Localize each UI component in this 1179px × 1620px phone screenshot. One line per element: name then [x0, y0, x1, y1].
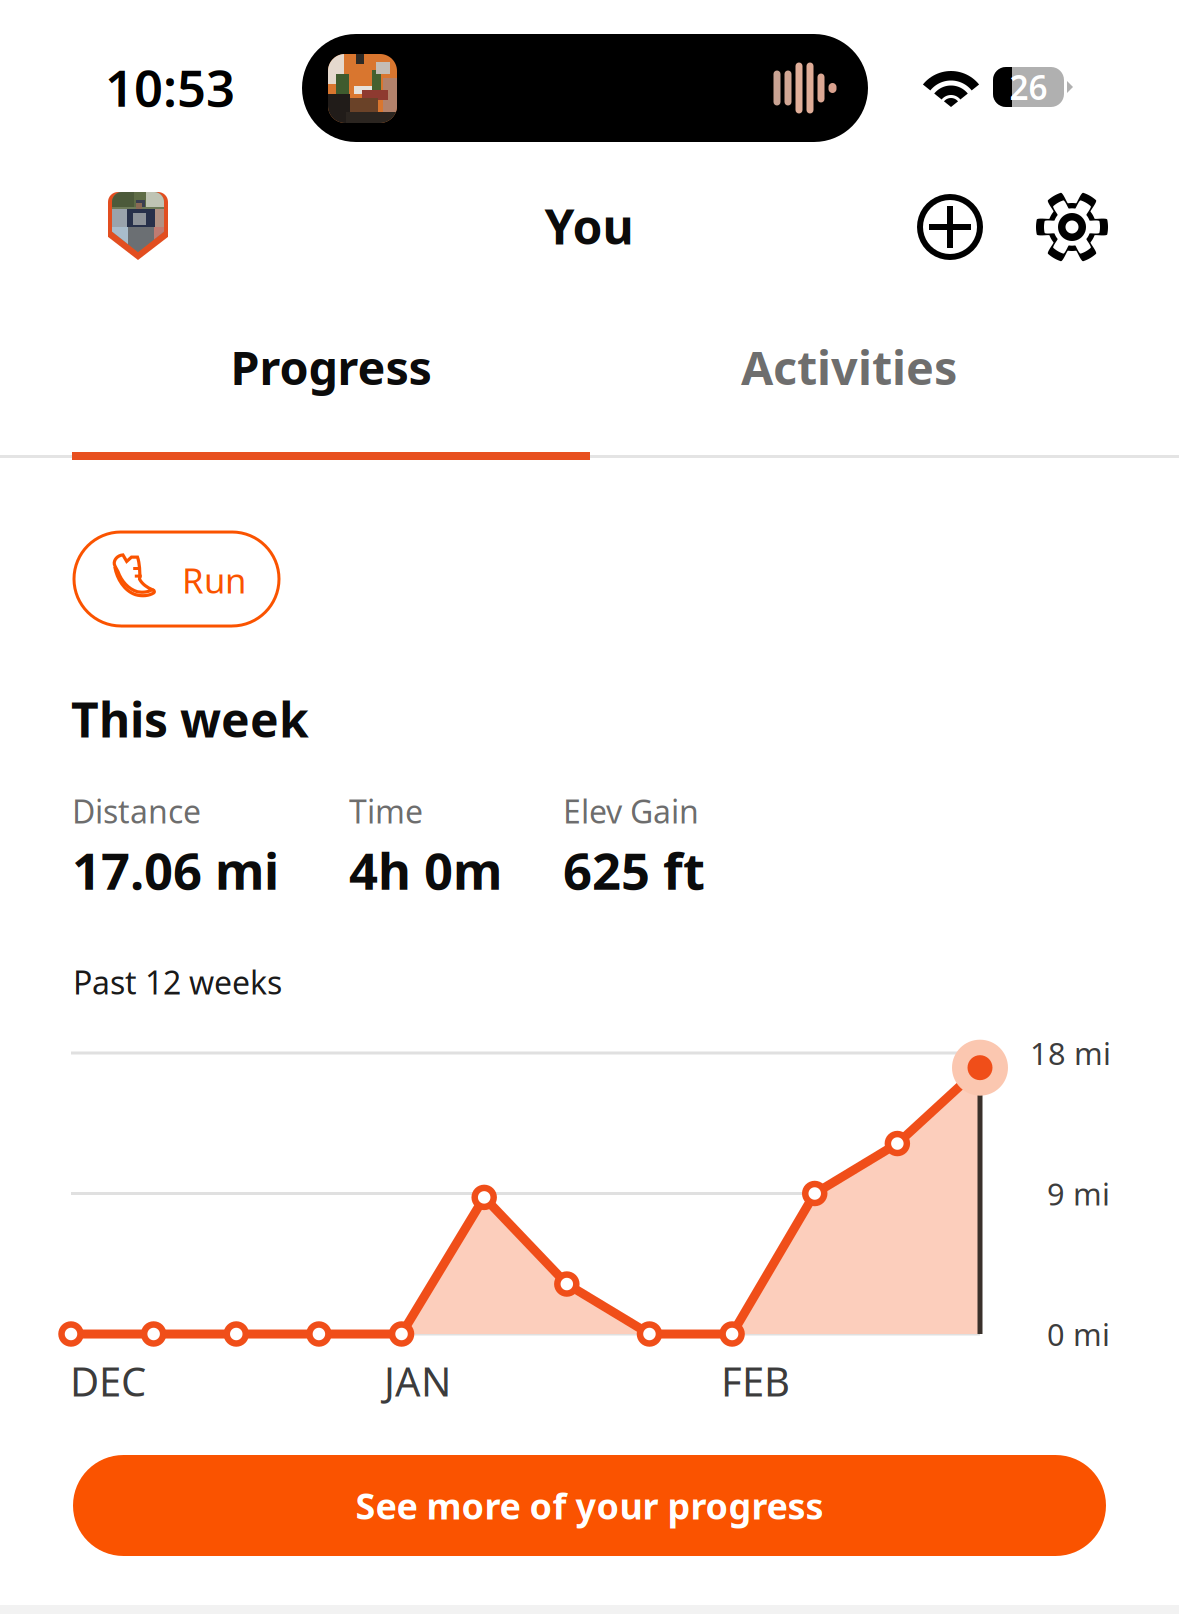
staticText: Distance	[72, 790, 201, 832]
staticText: 625 ft	[563, 836, 705, 904]
staticText: 0 mi	[1047, 1314, 1110, 1354]
staticText: Progress	[230, 336, 431, 398]
staticText: Run	[182, 557, 246, 603]
staticText: Elev Gain	[563, 790, 699, 832]
button[interactable]: Settings	[1036, 191, 1108, 263]
staticText: 4h 0m	[349, 836, 502, 904]
staticText: DEC	[70, 1354, 146, 1407]
staticText: Activities	[741, 336, 957, 398]
staticText: You	[544, 194, 633, 258]
button[interactable]: Run	[74, 532, 279, 626]
button[interactable]: Record activity	[916, 193, 983, 260]
staticText: 10:53	[105, 53, 235, 121]
staticText: 18 mi	[1030, 1033, 1111, 1073]
staticText: 26	[1009, 65, 1047, 109]
staticText: JAN	[384, 1354, 451, 1407]
staticText: 9 mi	[1047, 1173, 1110, 1214]
staticText: Time	[349, 790, 423, 832]
staticText: This week	[71, 687, 309, 751]
staticText: Past 12 weeks	[73, 961, 282, 1003]
staticText: See more of your progress	[355, 1482, 823, 1529]
button[interactable]: Activities	[590, 330, 1108, 460]
button[interactable]: Progress	[72, 330, 590, 460]
staticText: FEB	[721, 1354, 790, 1407]
button[interactable]: See more of your progress	[73, 1455, 1106, 1556]
staticText: 17.06 mi	[72, 836, 279, 904]
button[interactable]: Profile	[108, 192, 168, 260]
